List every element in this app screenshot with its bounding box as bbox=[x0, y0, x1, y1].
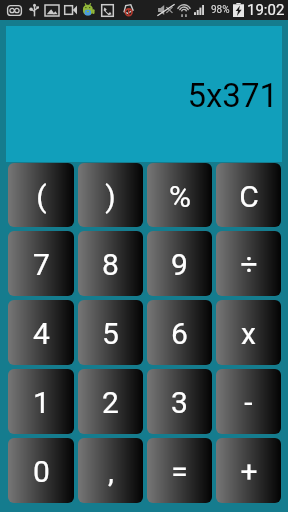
button[interactable]: 9 bbox=[147, 231, 212, 296]
staticText: + bbox=[240, 454, 258, 489]
staticText: ÷ bbox=[240, 247, 258, 282]
staticText: 7 bbox=[33, 247, 50, 282]
staticText: 4 bbox=[33, 316, 50, 351]
button[interactable]: 6 bbox=[147, 300, 212, 365]
staticText: = bbox=[171, 454, 188, 489]
button[interactable]: Open parenthesis bbox=[8, 163, 74, 227]
button[interactable]: Minus bbox=[216, 369, 281, 434]
staticText: - bbox=[244, 385, 253, 420]
staticText: ( bbox=[36, 179, 47, 214]
staticText: 6 bbox=[171, 316, 188, 351]
button[interactable]: 2 bbox=[78, 369, 143, 434]
staticText: ) bbox=[105, 179, 116, 214]
button[interactable]: Multiply bbox=[216, 300, 281, 365]
staticText: x bbox=[241, 316, 256, 351]
staticText: 8 bbox=[102, 247, 119, 282]
button[interactable]: Decimal separator bbox=[78, 438, 143, 503]
staticText: 19:02 bbox=[247, 1, 285, 19]
button[interactable]: Percent bbox=[147, 163, 212, 227]
button[interactable]: Equals bbox=[147, 438, 212, 503]
button[interactable]: 5x371 bbox=[6, 26, 282, 162]
button[interactable]: Clear bbox=[216, 163, 281, 227]
staticText: 3 bbox=[171, 385, 188, 420]
staticText: 2 bbox=[102, 385, 119, 420]
button[interactable]: 4 bbox=[8, 300, 74, 365]
staticText: 0 bbox=[33, 454, 50, 489]
staticText: 5 bbox=[102, 316, 119, 351]
button[interactable]: 7 bbox=[8, 231, 74, 296]
staticText: , bbox=[108, 454, 114, 489]
button[interactable]: 0 bbox=[8, 438, 74, 503]
button[interactable]: 5 bbox=[78, 300, 143, 365]
staticText: % bbox=[169, 179, 191, 214]
staticText: 1 bbox=[33, 385, 50, 420]
button[interactable]: 1 bbox=[8, 369, 74, 434]
button[interactable]: 3 bbox=[147, 369, 212, 434]
staticText: 5x371 bbox=[187, 76, 278, 115]
button[interactable]: Plus bbox=[216, 438, 281, 503]
button[interactable]: 8 bbox=[78, 231, 143, 296]
staticText: 98% bbox=[211, 4, 230, 16]
staticText: 9 bbox=[171, 247, 188, 282]
button[interactable]: Close parenthesis bbox=[78, 163, 143, 227]
staticText: C bbox=[239, 179, 259, 214]
button[interactable]: Divide bbox=[216, 231, 281, 296]
